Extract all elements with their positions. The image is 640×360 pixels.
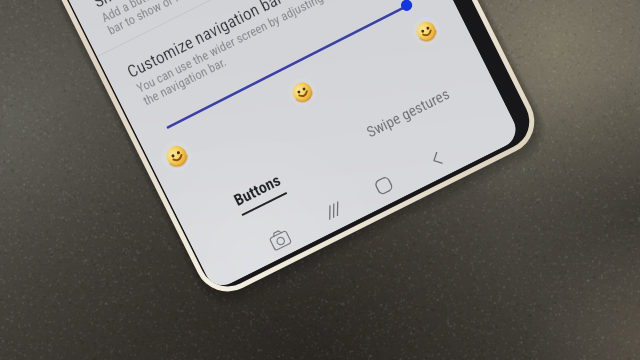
staticText: Show and hide button [90, 0, 229, 12]
button[interactable]: Buttons [216, 157, 299, 222]
button[interactable]: Home [362, 164, 405, 207]
button[interactable]: Swipe gestures [350, 73, 466, 153]
staticText: Customize navigation bar [124, 0, 286, 82]
button[interactable]: Camera [259, 218, 301, 261]
button[interactable]: Recent apps [312, 189, 355, 232]
button[interactable]: Back [415, 138, 458, 181]
staticText: Swipe gestures [364, 84, 453, 141]
staticText: Add a button to the end of the navigatio… [99, 0, 292, 38]
staticText: Buttons [231, 170, 284, 210]
staticText: You can use the wider screen by adjustin… [134, 0, 333, 109]
